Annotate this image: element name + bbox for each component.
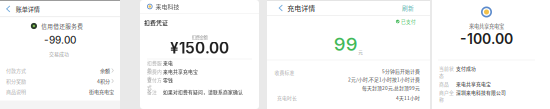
staticText: 2元/小时,不足1小时按1小时计费	[348, 76, 420, 83]
staticText: 扣费凭证	[144, 18, 168, 27]
button[interactable]: 账单详情	[6, 2, 40, 16]
staticText: 来电科技	[155, 2, 179, 11]
staticText: 街电充电宝	[89, 88, 114, 95]
staticText: 当前状态	[439, 65, 454, 79]
staticText: 4积分	[97, 77, 110, 85]
staticText: 扣费内容	[147, 68, 162, 82]
staticText: 扣费金额	[191, 34, 207, 40]
button[interactable]: 刷新	[402, 1, 414, 15]
staticText: ¥150.00	[170, 39, 229, 57]
button[interactable]: 付款方式	[0, 65, 120, 76]
button[interactable]: 商品说明	[0, 86, 120, 97]
staticText: 充电详情	[287, 3, 315, 13]
staticText: 商品说明	[6, 88, 26, 95]
staticText: 元	[358, 49, 363, 55]
staticText: 每天封顶20元,总封顶99元	[362, 84, 420, 91]
staticText: 来电共享充电宝	[469, 22, 504, 30]
staticText: 4天11小时	[396, 94, 420, 101]
staticText: 已支付	[401, 18, 416, 25]
staticText: 付款方式	[6, 67, 26, 74]
staticText: 扣费服务	[147, 59, 162, 73]
staticText: 如果对扣费有疑问，请联系商家确认	[163, 88, 243, 95]
staticText: 深圳来电科技有限公司	[456, 89, 506, 96]
staticText: 支付方式	[147, 76, 162, 90]
staticText: 交易成功	[49, 50, 69, 57]
staticText: 积分奖励	[6, 77, 26, 85]
staticText: 备注	[147, 88, 157, 95]
button[interactable]: 充电详情	[279, 1, 315, 15]
staticText: -99.00	[44, 34, 76, 46]
staticText: 来电共享充电宝	[163, 68, 198, 75]
staticText: 账单详情	[16, 4, 40, 13]
staticText: 99	[334, 33, 358, 55]
staticText: 支付成功	[456, 65, 476, 72]
staticText: 来电	[163, 59, 173, 66]
staticText: 商户全称	[439, 89, 454, 103]
staticText: 收费标准	[274, 69, 294, 76]
staticText: 信用借还服务费	[41, 22, 83, 30]
staticText: -100.00	[460, 30, 513, 47]
staticText: 来电共享充电宝	[456, 80, 491, 87]
button[interactable]: 积分奖励	[0, 76, 120, 86]
staticText: 充电时长	[277, 94, 297, 101]
staticText: 商品	[439, 80, 449, 87]
staticText: 余额	[100, 67, 110, 74]
staticText: 刷新	[402, 4, 414, 12]
staticText: 零钱	[163, 76, 173, 83]
staticText: 5分钟后开始计费	[382, 68, 420, 75]
